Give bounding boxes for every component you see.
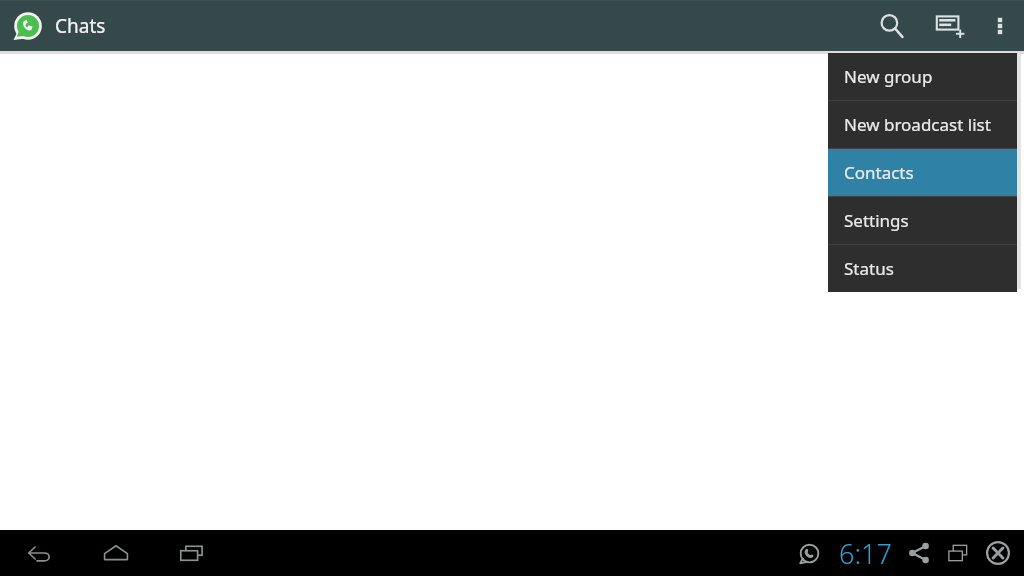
button[interactable]: 6:17 <box>830 530 900 576</box>
button[interactable]: Settings <box>828 197 1017 244</box>
staticText: 6:17 <box>839 535 892 572</box>
staticText: Chats <box>55 13 106 39</box>
staticText: Settings <box>844 209 909 232</box>
staticText: New broadcast list <box>844 113 991 136</box>
button[interactable]: Multi window <box>938 530 978 576</box>
button[interactable]: Home <box>88 530 144 576</box>
button[interactable]: New group <box>828 53 1017 100</box>
button[interactable]: Status <box>828 245 1017 292</box>
button[interactable]: New chat <box>920 0 980 51</box>
button[interactable]: New broadcast list <box>828 101 1017 148</box>
staticText: Contacts <box>844 161 914 184</box>
button[interactable]: More options <box>980 0 1020 51</box>
button[interactable]: Search <box>864 0 920 51</box>
staticText: Status <box>844 257 894 280</box>
button[interactable]: WhatsApp notification <box>792 530 826 576</box>
button[interactable]: Share <box>900 530 938 576</box>
button[interactable]: Back <box>12 530 68 576</box>
staticText: New group <box>844 65 933 88</box>
button[interactable]: Recent apps <box>164 530 220 576</box>
button[interactable]: Close <box>978 530 1018 576</box>
button[interactable]: Contacts <box>828 149 1017 196</box>
